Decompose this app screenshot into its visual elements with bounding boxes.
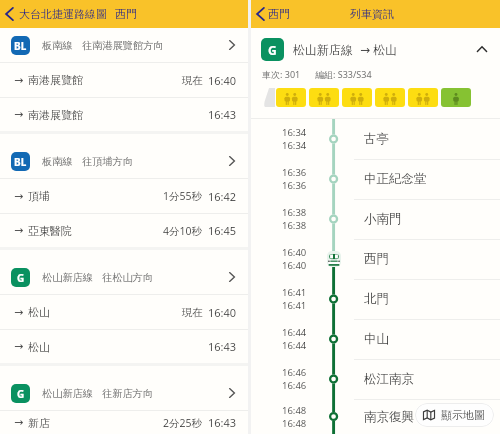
staticText: 松山 xyxy=(28,340,50,354)
staticText: 西門 xyxy=(364,251,389,267)
staticText: → xyxy=(14,416,24,429)
staticText: 16:34 xyxy=(282,126,307,139)
staticText: 16:36 xyxy=(282,179,307,192)
button[interactable]: 16:44 xyxy=(251,319,500,359)
staticText: 16:40 xyxy=(208,73,237,88)
staticText: 16:43 xyxy=(208,339,237,354)
button[interactable]: 16:40 xyxy=(251,239,500,279)
staticText: 16:41 xyxy=(282,299,307,312)
staticText: 松山新店線 xyxy=(42,387,93,400)
button[interactable]: 顯示地圖 xyxy=(415,403,494,427)
button[interactable]: 16:48 xyxy=(251,399,500,434)
staticText: 車次: 301 xyxy=(262,68,301,80)
staticText: 4分10秒 xyxy=(163,224,203,238)
staticText: G xyxy=(17,271,25,285)
staticText: 松山新店線 xyxy=(42,271,93,284)
button[interactable]: 16:34 xyxy=(251,119,500,159)
staticText: 現在 xyxy=(182,306,203,319)
staticText: 16:44 xyxy=(282,339,307,352)
staticText: 南港展覽館 xyxy=(28,73,83,87)
button[interactable]: G xyxy=(0,376,248,410)
staticText: 板南線 xyxy=(42,155,73,168)
staticText: 亞東醫院 xyxy=(28,224,72,238)
staticText: BL xyxy=(14,155,27,169)
staticText: 16:40 xyxy=(282,259,307,272)
staticText: 頂埔 xyxy=(28,189,50,203)
staticText: 16:40 xyxy=(282,246,307,259)
staticText: 南京復興 xyxy=(364,409,414,425)
staticText: 大台北捷運路線圖 xyxy=(19,7,107,21)
button[interactable]: 16:38 xyxy=(251,199,500,239)
staticText: 小南門 xyxy=(364,211,402,227)
staticText: → xyxy=(14,340,24,353)
staticText: → 松山 xyxy=(360,41,398,57)
button[interactable]: Collapse xyxy=(474,41,490,57)
staticText: → xyxy=(14,224,24,237)
staticText: 列車資訊 xyxy=(350,7,394,21)
staticText: 16:36 xyxy=(282,166,307,179)
staticText: 板南線 xyxy=(42,39,73,52)
staticText: BL xyxy=(14,39,27,53)
staticText: 中山 xyxy=(364,331,389,347)
staticText: 16:40 xyxy=(208,305,237,320)
button[interactable]: 16:41 xyxy=(251,279,500,319)
staticText: 16:38 xyxy=(282,219,307,232)
button[interactable]: G xyxy=(0,260,248,294)
staticText: → xyxy=(14,108,24,121)
staticText: 16:38 xyxy=(282,206,307,219)
staticText: 編組: S33/S34 xyxy=(315,68,372,80)
staticText: 古亭 xyxy=(364,131,389,147)
button[interactable]: → xyxy=(0,330,248,363)
staticText: 松江南京 xyxy=(364,371,414,387)
staticText: → xyxy=(14,74,24,87)
button[interactable]: → xyxy=(0,295,248,329)
button[interactable]: BL xyxy=(0,144,248,178)
staticText: 16:44 xyxy=(282,326,307,339)
button[interactable]: Back xyxy=(2,5,17,23)
staticText: 16:43 xyxy=(208,415,237,430)
staticText: 松山 xyxy=(28,305,50,319)
staticText: 西門 xyxy=(268,7,290,21)
staticText: 新店 xyxy=(28,416,50,430)
staticText: 往南港展覽館方向 xyxy=(82,39,164,52)
button[interactable]: → xyxy=(0,63,248,97)
staticText: 西門 xyxy=(115,7,137,21)
button[interactable]: 16:36 xyxy=(251,159,500,199)
button[interactable]: → xyxy=(0,411,248,434)
staticText: 16:34 xyxy=(282,139,307,152)
staticText: 16:48 xyxy=(282,404,307,417)
staticText: 16:42 xyxy=(208,189,237,204)
staticText: 16:43 xyxy=(208,107,237,122)
button[interactable]: Back xyxy=(253,5,268,23)
button[interactable]: G xyxy=(251,35,500,63)
button[interactable]: BL xyxy=(0,28,248,62)
staticText: → xyxy=(14,306,24,319)
staticText: 中正紀念堂 xyxy=(364,171,427,187)
staticText: 16:45 xyxy=(208,223,237,238)
staticText: G xyxy=(17,387,25,401)
staticText: 南港展覽館 xyxy=(28,108,83,122)
staticText: 16:48 xyxy=(282,417,307,430)
staticText: 往新店方向 xyxy=(102,387,153,400)
button[interactable]: 16:46 xyxy=(251,359,500,399)
staticText: 16:46 xyxy=(282,379,307,392)
staticText: 往松山方向 xyxy=(102,271,153,284)
staticText: 2分25秒 xyxy=(163,416,203,430)
staticText: 往頂埔方向 xyxy=(82,155,133,168)
staticText: 16:46 xyxy=(282,366,307,379)
staticText: 1分55秒 xyxy=(163,189,203,203)
staticText: 松山新店線 xyxy=(293,42,353,57)
staticText: 現在 xyxy=(182,74,203,87)
button[interactable]: → xyxy=(0,98,248,131)
staticText: 北門 xyxy=(364,291,389,307)
staticText: 顯示地圖 xyxy=(441,408,485,422)
button[interactable]: → xyxy=(0,214,248,247)
staticText: → xyxy=(14,190,24,203)
button[interactable]: → xyxy=(0,179,248,213)
staticText: 16:41 xyxy=(282,286,307,299)
staticText: G xyxy=(268,42,277,58)
